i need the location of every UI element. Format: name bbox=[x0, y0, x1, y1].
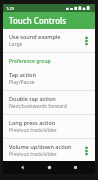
staticText: Play/Pause bbox=[9, 79, 35, 86]
staticText: Previous track/slider bbox=[9, 151, 57, 157]
staticText: Large bbox=[9, 41, 23, 48]
button[interactable]: Long press action bbox=[3, 115, 95, 138]
staticText: Use sound example bbox=[9, 33, 61, 40]
button[interactable]: Tap action bbox=[3, 67, 95, 90]
button[interactable]: More options bbox=[81, 35, 92, 46]
button[interactable]: More options bbox=[81, 145, 92, 156]
button[interactable]: Use sound example bbox=[3, 29, 95, 52]
button[interactable]: Volume up/down action bbox=[3, 139, 95, 161]
button[interactable]: Double tap action bbox=[3, 91, 95, 114]
staticText: Tap action bbox=[9, 71, 36, 78]
staticText: Preference group bbox=[9, 58, 51, 65]
button[interactable]: Home bbox=[43, 161, 56, 174]
staticText: Volume up/down action bbox=[9, 143, 72, 150]
staticText: Touch Controls bbox=[9, 15, 67, 26]
staticText: 1:25 bbox=[6, 6, 14, 11]
staticText: Long press action bbox=[9, 119, 56, 126]
staticText: Previous track/slider bbox=[9, 127, 57, 134]
staticText: Double tap action bbox=[9, 95, 56, 102]
button[interactable]: Recent apps bbox=[69, 161, 82, 174]
staticText: Next/backwards forward bbox=[9, 103, 67, 110]
button[interactable]: Back bbox=[16, 161, 29, 174]
